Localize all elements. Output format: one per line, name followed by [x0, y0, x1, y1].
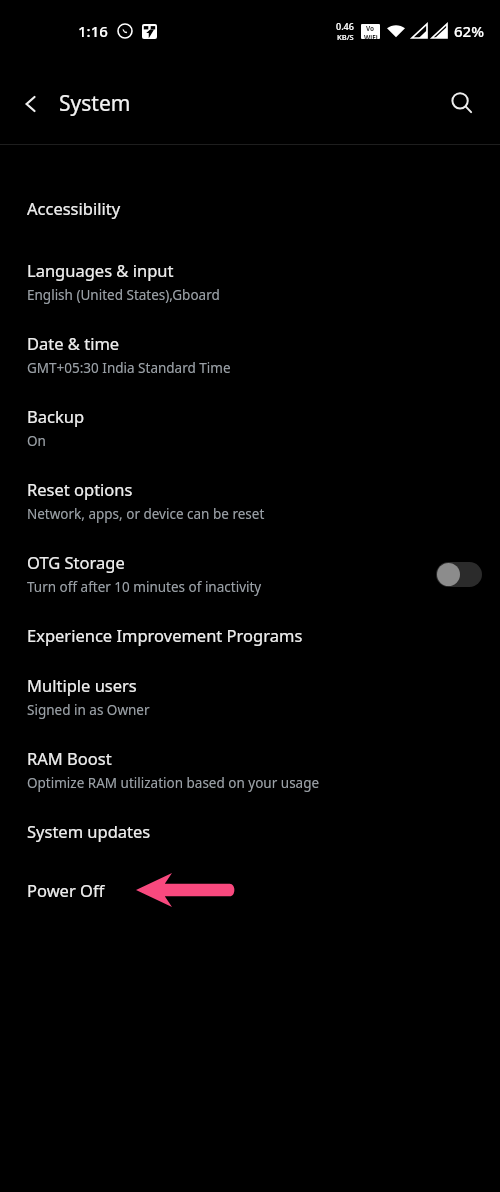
staticText: 0.46 [336, 20, 354, 32]
other: Back [20, 93, 42, 115]
staticText: Vo [366, 24, 375, 33]
staticText: 62% [454, 21, 484, 41]
staticText: Experience Improvement Programs [27, 624, 303, 646]
button[interactable]: Languages & input [0, 245, 500, 318]
staticText: Network, apps, or device can be reset [27, 505, 265, 523]
staticText: Turn off after 10 minutes of inactivity [27, 578, 262, 596]
button[interactable]: System updates [0, 806, 500, 856]
staticText: English (United States),Gboard [27, 286, 220, 304]
staticText: Accessibility [27, 197, 121, 219]
staticText: Power Off [27, 879, 105, 901]
staticText: Signed in as Owner [27, 701, 150, 719]
staticText: Optimize RAM utilization based on your u… [27, 774, 320, 792]
staticText: 1:16 [78, 21, 108, 41]
staticText: RAM Boost [27, 747, 112, 769]
staticText: Reset options [27, 478, 133, 500]
button[interactable]: Backup [0, 391, 500, 464]
staticText: Date & time [27, 332, 120, 354]
button[interactable]: Back [0, 79, 143, 128]
staticText: On [27, 432, 46, 450]
button[interactable]: OTG Storage [0, 537, 500, 610]
staticText: Languages & input [27, 259, 174, 281]
staticText: KB/S [337, 32, 354, 42]
button[interactable]: Multiple users [0, 660, 500, 733]
button[interactable]: RAM Boost [0, 733, 500, 806]
button[interactable]: Power Off [0, 856, 500, 924]
button[interactable]: Search [438, 79, 486, 127]
staticText: System [59, 89, 131, 118]
button[interactable]: OTG Storage toggle [436, 561, 482, 587]
staticText: WiFi [364, 33, 378, 39]
staticText: Backup [27, 405, 85, 427]
staticText: Multiple users [27, 674, 137, 696]
staticText: GMT+05:30 India Standard Time [27, 359, 231, 377]
button[interactable]: Experience Improvement Programs [0, 610, 500, 660]
button[interactable]: Accessibility [0, 145, 500, 245]
staticText: System updates [27, 820, 151, 842]
button[interactable]: Reset options [0, 464, 500, 537]
button[interactable]: Date & time [0, 318, 500, 391]
staticText: OTG Storage [27, 551, 125, 573]
